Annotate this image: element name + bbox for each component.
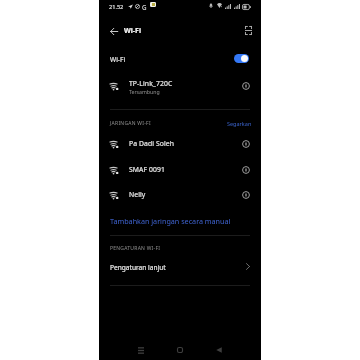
staticText: SMAF 0091 [129, 165, 165, 174]
button[interactable]: Back [209, 340, 229, 360]
staticText: Wi-Fi [124, 26, 142, 36]
button[interactable]: Network details [240, 189, 251, 200]
button[interactable]: Pengaturan lanjut [99, 255, 261, 281]
button[interactable]: Home [170, 340, 190, 360]
staticText: Pengaturan lanjut [110, 263, 166, 272]
staticText: Tersambung [129, 88, 160, 95]
staticText: Nelly [129, 190, 146, 199]
staticText: JARINGAN WI-FI [110, 120, 151, 127]
staticText: Segarkan [227, 120, 252, 127]
button[interactable]: Wi-Fi [99, 46, 261, 70]
staticText: TP-Link_720C [129, 79, 173, 88]
staticText: PENGATURAN WI-FI [110, 245, 161, 252]
button[interactable]: Recents [131, 340, 151, 360]
button[interactable]: Pa Dadi Soleh [99, 131, 261, 156]
staticText: Tambahkan jaringan secara manual [110, 216, 231, 226]
button[interactable]: TP-Link_720C [99, 74, 261, 98]
button[interactable]: Scan QR code [238, 20, 258, 40]
button[interactable]: Back [104, 21, 124, 41]
button[interactable]: Nelly [99, 182, 261, 207]
button[interactable]: Network details [240, 164, 251, 175]
button[interactable]: Network details [240, 80, 251, 91]
staticText: 21.52 [109, 3, 124, 11]
staticText: Pa Dadi Soleh [129, 139, 174, 148]
staticText: Wi-Fi [110, 55, 126, 64]
button[interactable]: SMAF 0091 [99, 157, 261, 182]
staticText: G [142, 3, 147, 11]
button[interactable]: Network details [240, 138, 251, 149]
button[interactable]: Segarkan [225, 119, 254, 128]
button[interactable]: Tambahkan jaringan secara manual [99, 208, 261, 232]
